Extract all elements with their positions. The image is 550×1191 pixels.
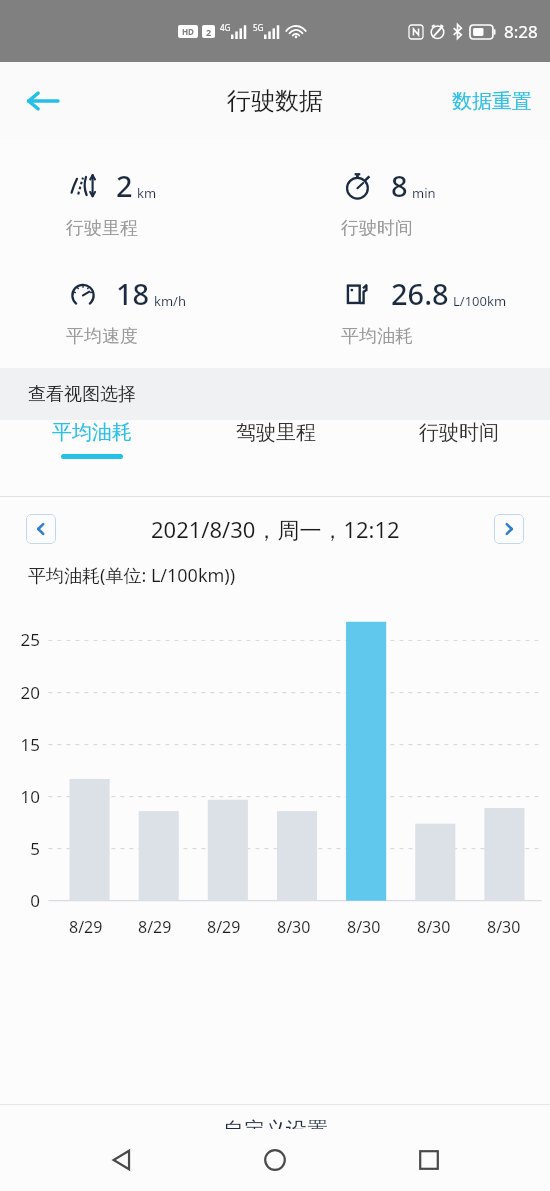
staticText: 平均速度 <box>66 325 138 348</box>
staticText: 8/29 <box>138 916 172 938</box>
staticText: 8/30 <box>277 916 311 938</box>
staticText: 数据重置 <box>452 89 532 114</box>
staticText: 5G <box>253 22 264 33</box>
staticText: 自定义设置 <box>223 1117 328 1141</box>
staticText: 2 <box>206 26 212 38</box>
button[interactable]: 行驶时间 <box>367 420 550 454</box>
staticText: km <box>137 184 157 202</box>
button[interactable]: Back <box>90 1129 154 1191</box>
staticText: 0 <box>0 889 40 912</box>
staticText: 26.8 <box>391 274 449 313</box>
staticText: 行驶时间 <box>419 420 499 445</box>
staticText: 25 <box>0 628 40 651</box>
staticText: 平均油耗(单位: L/100km)) <box>28 563 236 588</box>
staticText: 15 <box>0 733 40 756</box>
button[interactable]: 驾驶里程 <box>184 420 367 454</box>
staticText: 2 <box>116 166 133 205</box>
staticText: 8:28 <box>504 20 538 43</box>
staticText: L/100km <box>453 292 507 310</box>
staticText: 20 <box>0 681 40 704</box>
staticText: 8/30 <box>487 916 521 938</box>
staticText: 8/30 <box>417 916 451 938</box>
staticText: km/h <box>154 292 186 310</box>
staticText: min <box>412 184 436 202</box>
staticText: 4G <box>220 22 231 33</box>
button[interactable]: 自定义设置 <box>0 1105 550 1129</box>
staticText: 10 <box>0 785 40 808</box>
staticText: 行驶数据 <box>227 86 323 116</box>
staticText: 驾驶里程 <box>236 420 316 445</box>
staticText: 5 <box>0 837 40 860</box>
button[interactable]: 平均油耗 <box>0 420 184 459</box>
staticText: 行驶里程 <box>66 217 138 240</box>
staticText: 8/30 <box>347 916 381 938</box>
staticText: HD <box>182 26 194 37</box>
staticText: 2021/8/30，周一，12:12 <box>151 514 400 544</box>
button[interactable]: Home <box>243 1129 307 1191</box>
staticText: 平均油耗 <box>341 325 413 348</box>
staticText: 行驶时间 <box>341 217 413 240</box>
staticText: 8/29 <box>69 916 103 938</box>
button[interactable]: Next <box>494 514 524 544</box>
staticText: 8/29 <box>207 916 241 938</box>
button[interactable]: Previous <box>26 514 56 544</box>
staticText: 平均油耗 <box>52 420 132 445</box>
button[interactable]: Back <box>14 73 70 129</box>
staticText: 8 <box>391 166 408 205</box>
staticText: 18 <box>116 274 150 313</box>
button[interactable]: 数据重置 <box>434 75 550 128</box>
button[interactable]: Recent apps <box>397 1129 461 1191</box>
staticText: 查看视图选择 <box>28 383 136 406</box>
